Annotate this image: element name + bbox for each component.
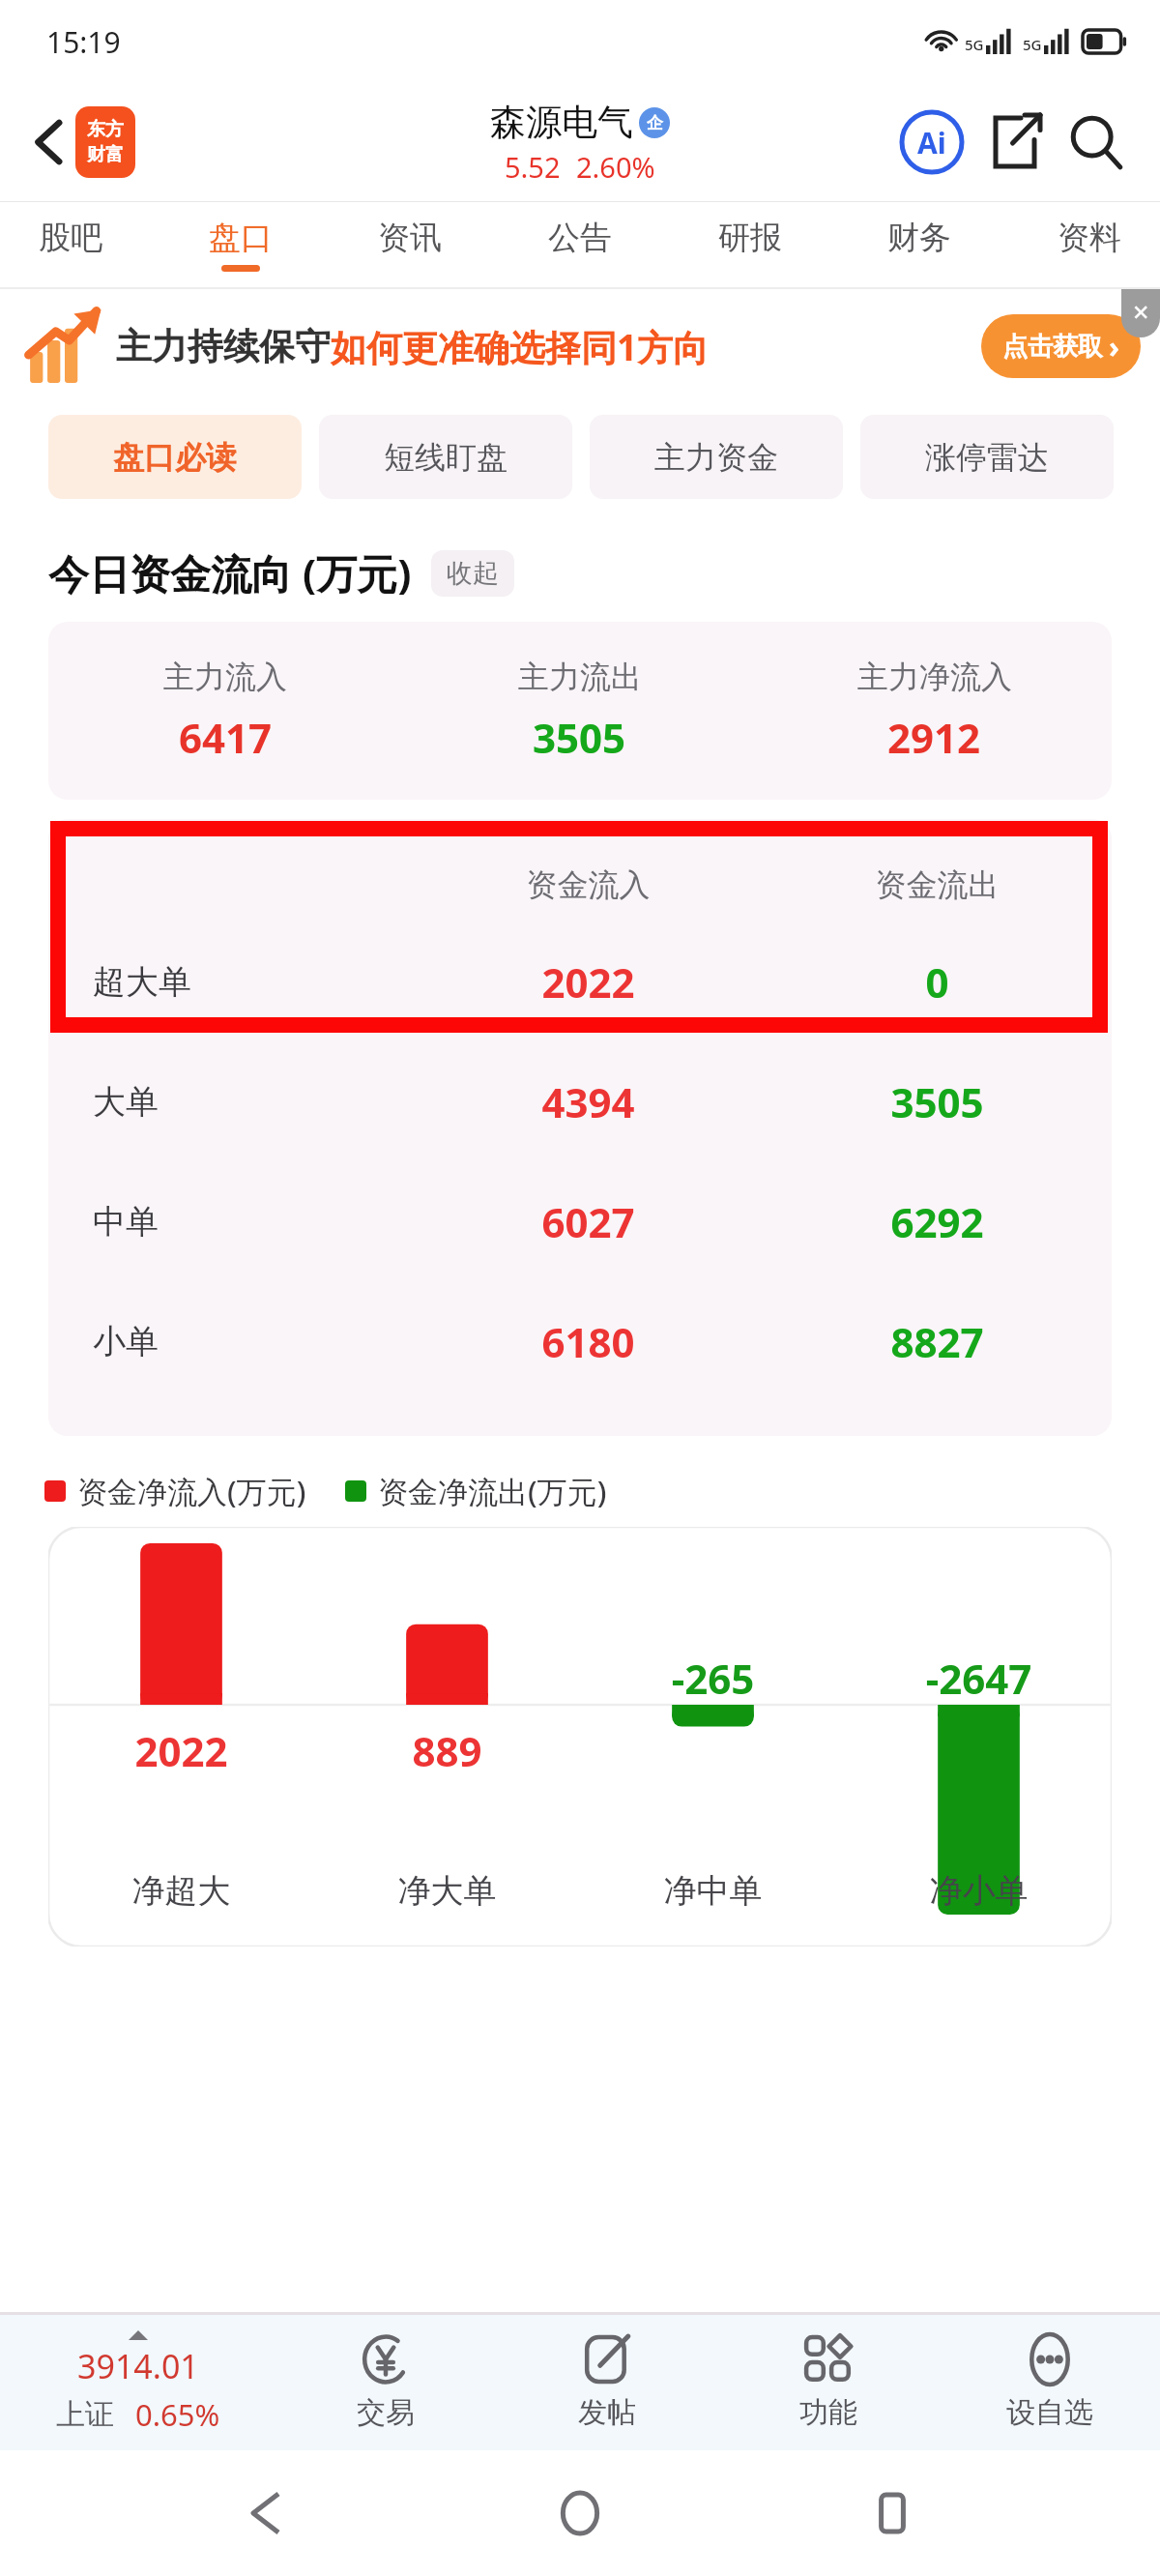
button[interactable]: 资讯 [366, 202, 453, 287]
staticText: 东方 [87, 118, 124, 141]
staticText: 点击获取 [1002, 331, 1103, 363]
staticText: -265 [580, 1651, 846, 1706]
staticText: 主力流出 [518, 658, 642, 696]
staticText: ✕ [1132, 301, 1150, 326]
staticText: 889 [314, 1723, 580, 1778]
button[interactable]: 发帖 [496, 2315, 717, 2450]
button[interactable]: 财务 [876, 202, 963, 287]
staticText: 净大单 [314, 1870, 580, 1912]
staticText: 资讯 [378, 218, 442, 258]
staticText: 大单 [93, 1081, 414, 1123]
staticText: 6180 [414, 1314, 763, 1369]
button[interactable]: 涨停雷达 [860, 415, 1114, 499]
staticText: 3914.01 [77, 2344, 199, 2388]
staticText: 主力净流入 [857, 658, 1012, 696]
button[interactable]: 森源电气 [490, 100, 670, 186]
staticText: 超大单 [93, 961, 414, 1003]
button[interactable]: Back [225, 2470, 312, 2557]
staticText: 2022 [414, 954, 763, 1010]
staticText: 15:19 [46, 22, 121, 62]
staticText: 主力持续保守 [116, 324, 331, 369]
button[interactable]: Home [536, 2470, 623, 2557]
button[interactable]: 研报 [707, 202, 794, 287]
button[interactable]: 资料 [1046, 202, 1133, 287]
button[interactable]: 2022 [48, 1527, 1112, 1947]
button[interactable]: 交易 [275, 2315, 496, 2450]
staticText: 盘口 [209, 218, 273, 258]
staticText: 财务 [887, 218, 951, 258]
staticText: 0 [763, 954, 1112, 1010]
staticText: 8827 [763, 1314, 1112, 1369]
staticText: 中单 [93, 1201, 414, 1243]
staticText: 研报 [718, 218, 782, 258]
staticText: -2647 [846, 1651, 1112, 1706]
staticText: 发帖 [578, 2394, 636, 2431]
staticText: 5G [965, 35, 984, 54]
button[interactable]: Recent apps [849, 2470, 936, 2557]
button[interactable]: Close ad [1121, 289, 1160, 337]
staticText: 今日资金流向 (万元) [48, 545, 412, 600]
button[interactable]: 股吧 [27, 202, 114, 287]
button[interactable]: AI assistant [895, 105, 969, 179]
staticText: 资料 [1058, 218, 1121, 258]
button[interactable]: 超大单 [48, 922, 1112, 1041]
button[interactable]: 公告 [536, 202, 623, 287]
staticText: 4394 [414, 1074, 763, 1129]
button[interactable]: 收起 [431, 550, 514, 597]
staticText: 功能 [799, 2394, 857, 2431]
staticText: 3505 [763, 1074, 1112, 1129]
button[interactable]: Share [980, 107, 1050, 177]
staticText: 小单 [93, 1321, 414, 1362]
staticText: 2.60% [576, 148, 655, 186]
staticText: 资金流出 [763, 865, 1112, 904]
staticText: 6027 [414, 1194, 763, 1249]
button[interactable]: 主力持续保守 [0, 289, 1160, 403]
button[interactable]: 大单 [48, 1041, 1112, 1161]
staticText: 净超大 [48, 1870, 314, 1912]
staticText: 2022 [48, 1723, 314, 1778]
button[interactable]: 设自选 [939, 2315, 1160, 2450]
button[interactable]: 3914.01 [0, 2315, 275, 2450]
button[interactable]: 点击获取 [981, 314, 1141, 378]
staticText: 交易 [357, 2394, 415, 2431]
staticText: 财富 [87, 143, 124, 166]
staticText: 收起 [447, 557, 499, 590]
button[interactable]: Back [19, 109, 79, 175]
button[interactable]: 盘口必读 [48, 415, 302, 499]
staticText: 盘口必读 [113, 438, 237, 477]
button[interactable]: Search [1059, 105, 1133, 179]
staticText: 如何更准确选择同1方向 [331, 322, 710, 371]
staticText: 6417 [179, 710, 273, 765]
button[interactable]: 主力资金 [590, 415, 843, 499]
staticText: 设自选 [1006, 2394, 1093, 2431]
staticText: 主力流入 [163, 658, 287, 696]
button[interactable]: 盘口 [197, 202, 284, 287]
staticText: 净中单 [580, 1870, 846, 1912]
staticText: Ai [917, 123, 946, 162]
staticText: 5.52 [505, 148, 561, 186]
staticText: 资金流入 [414, 865, 763, 904]
staticText: 3505 [533, 710, 626, 765]
button[interactable]: 主力流入 [48, 622, 1112, 800]
staticText: 资金净流入(万元) [77, 1471, 306, 1511]
staticText: › [1109, 327, 1119, 366]
staticText: 森源电气 [490, 100, 633, 145]
staticText: 涨停雷达 [925, 438, 1049, 477]
staticText: 公告 [548, 218, 612, 258]
button[interactable]: 小单 [48, 1281, 1112, 1401]
staticText: 上证 [56, 2396, 114, 2433]
staticText: 净小单 [846, 1870, 1112, 1912]
button[interactable]: 短线盯盘 [319, 415, 572, 499]
staticText: 资金净流出(万元) [378, 1471, 607, 1511]
staticText: 企 [647, 113, 663, 133]
staticText: 主力资金 [654, 438, 778, 477]
staticText: 2912 [887, 710, 981, 765]
staticText: 0.65% [135, 2394, 220, 2435]
button[interactable]: East Money [75, 106, 135, 178]
button[interactable]: 功能 [717, 2315, 939, 2450]
staticText: 股吧 [39, 218, 102, 258]
button[interactable]: 中单 [48, 1161, 1112, 1281]
staticText: 5G [1023, 35, 1042, 54]
staticText: 6292 [763, 1194, 1112, 1249]
staticText: 短线盯盘 [384, 438, 507, 477]
